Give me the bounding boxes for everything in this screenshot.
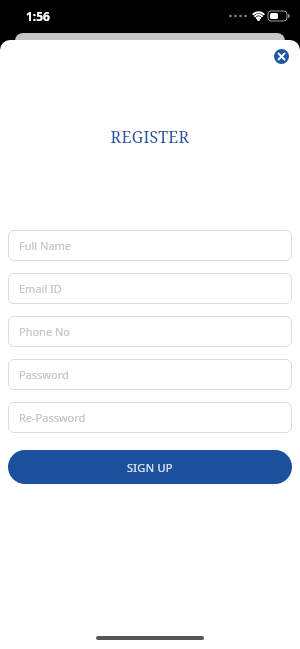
staticText: Password bbox=[19, 367, 69, 382]
staticText: Full Name bbox=[19, 238, 72, 253]
staticText: 1:56 bbox=[26, 8, 50, 24]
button[interactable]: Email ID bbox=[8, 273, 292, 304]
staticText: SIGN UP bbox=[127, 460, 173, 475]
staticText: Email ID bbox=[19, 281, 62, 296]
staticText: Phone No bbox=[19, 324, 70, 339]
button[interactable] bbox=[274, 49, 289, 64]
staticText: REGISTER bbox=[0, 126, 300, 148]
button[interactable]: Phone No bbox=[8, 316, 292, 347]
button[interactable]: Password bbox=[8, 359, 292, 390]
button[interactable]: Full Name bbox=[8, 230, 292, 261]
button[interactable]: Re-Password bbox=[8, 402, 292, 433]
button[interactable]: SIGN UP bbox=[8, 450, 292, 484]
staticText: Re-Password bbox=[19, 410, 86, 425]
